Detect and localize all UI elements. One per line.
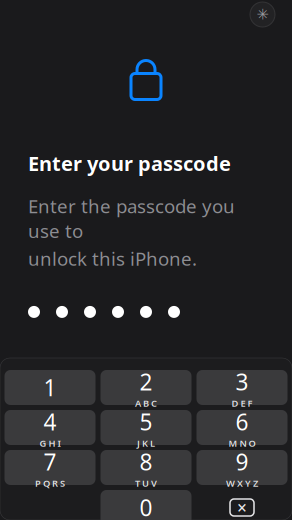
staticText: 8 [139, 447, 152, 477]
staticText: J K L [137, 437, 155, 449]
staticText: D E F [231, 397, 252, 409]
staticText: A B C [135, 397, 157, 409]
button[interactable]: 3 [196, 370, 287, 405]
button[interactable]: 5 [100, 410, 191, 445]
staticText: P Q R S [35, 477, 65, 489]
staticText: 0 [139, 492, 152, 520]
staticText: 2 [139, 367, 152, 397]
button[interactable]: 0 [100, 490, 191, 520]
button[interactable]: 9 [196, 450, 287, 485]
staticText: × [237, 496, 247, 519]
button[interactable]: 6 [196, 410, 287, 445]
staticText: 7 [43, 447, 56, 477]
button[interactable]: 7 [4, 450, 95, 485]
button[interactable]: 8 [100, 450, 191, 485]
button[interactable]: Loading [250, 2, 275, 27]
button[interactable]: Delete [196, 490, 287, 520]
staticText: Enter your passcode [28, 150, 231, 177]
staticText: W X Y Z [226, 477, 258, 489]
staticText: Enter the passcode you use to [28, 194, 235, 243]
button[interactable]: 1 [4, 370, 95, 405]
staticText: ✳ [256, 6, 268, 23]
staticText: G H I [39, 437, 60, 449]
staticText: 6 [235, 407, 248, 437]
staticText: 4 [43, 407, 56, 437]
staticText: 9 [235, 447, 248, 477]
button[interactable]: 4 [4, 410, 95, 445]
staticText: unlock this iPhone. [28, 246, 197, 271]
staticText: 5 [139, 407, 152, 437]
button[interactable]: 2 [100, 370, 191, 405]
staticText: M N O [228, 437, 255, 449]
staticText: 1 [43, 372, 56, 402]
staticText: T U V [135, 477, 157, 489]
staticText: 3 [235, 367, 248, 397]
